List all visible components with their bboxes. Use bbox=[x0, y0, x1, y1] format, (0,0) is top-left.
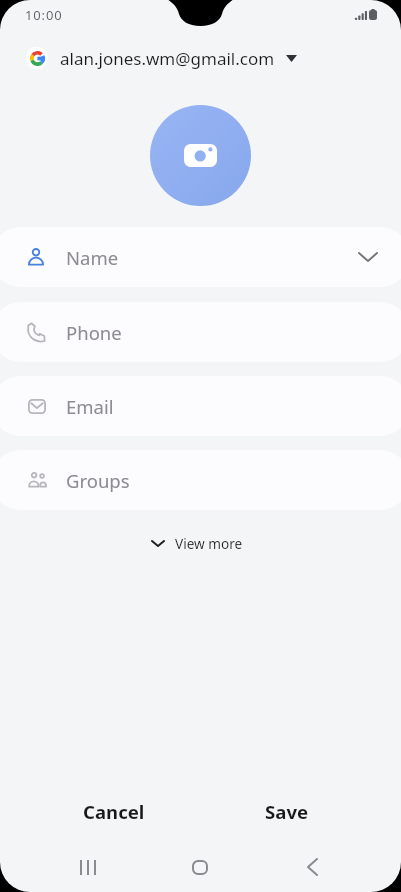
button[interactable]: Add photo bbox=[150, 105, 251, 206]
staticText: Cancel bbox=[83, 799, 145, 824]
button[interactable]: Phone bbox=[0, 302, 401, 362]
button[interactable]: Cancel bbox=[28, 788, 200, 834]
button[interactable]: Email bbox=[0, 376, 401, 436]
staticText: Name bbox=[66, 245, 119, 270]
staticText: Save bbox=[265, 799, 309, 824]
staticText: alan.jones.wm@gmail.com bbox=[60, 47, 275, 70]
button[interactable]: Save bbox=[200, 788, 373, 834]
staticText: Email bbox=[66, 394, 114, 419]
staticText: Groups bbox=[66, 468, 130, 493]
button[interactable]: View more bbox=[138, 526, 257, 560]
button[interactable]: Name bbox=[0, 227, 401, 287]
staticText: 10:00 bbox=[25, 6, 63, 24]
button[interactable]: Recent apps bbox=[31, 852, 144, 882]
button[interactable]: Home bbox=[144, 852, 256, 882]
button[interactable]: Groups bbox=[0, 450, 401, 510]
button[interactable]: Back bbox=[256, 852, 368, 882]
staticText: Phone bbox=[66, 320, 122, 345]
staticText: View more bbox=[175, 534, 243, 553]
button[interactable]: alan.jones.wm@gmail.com bbox=[0, 36, 401, 80]
